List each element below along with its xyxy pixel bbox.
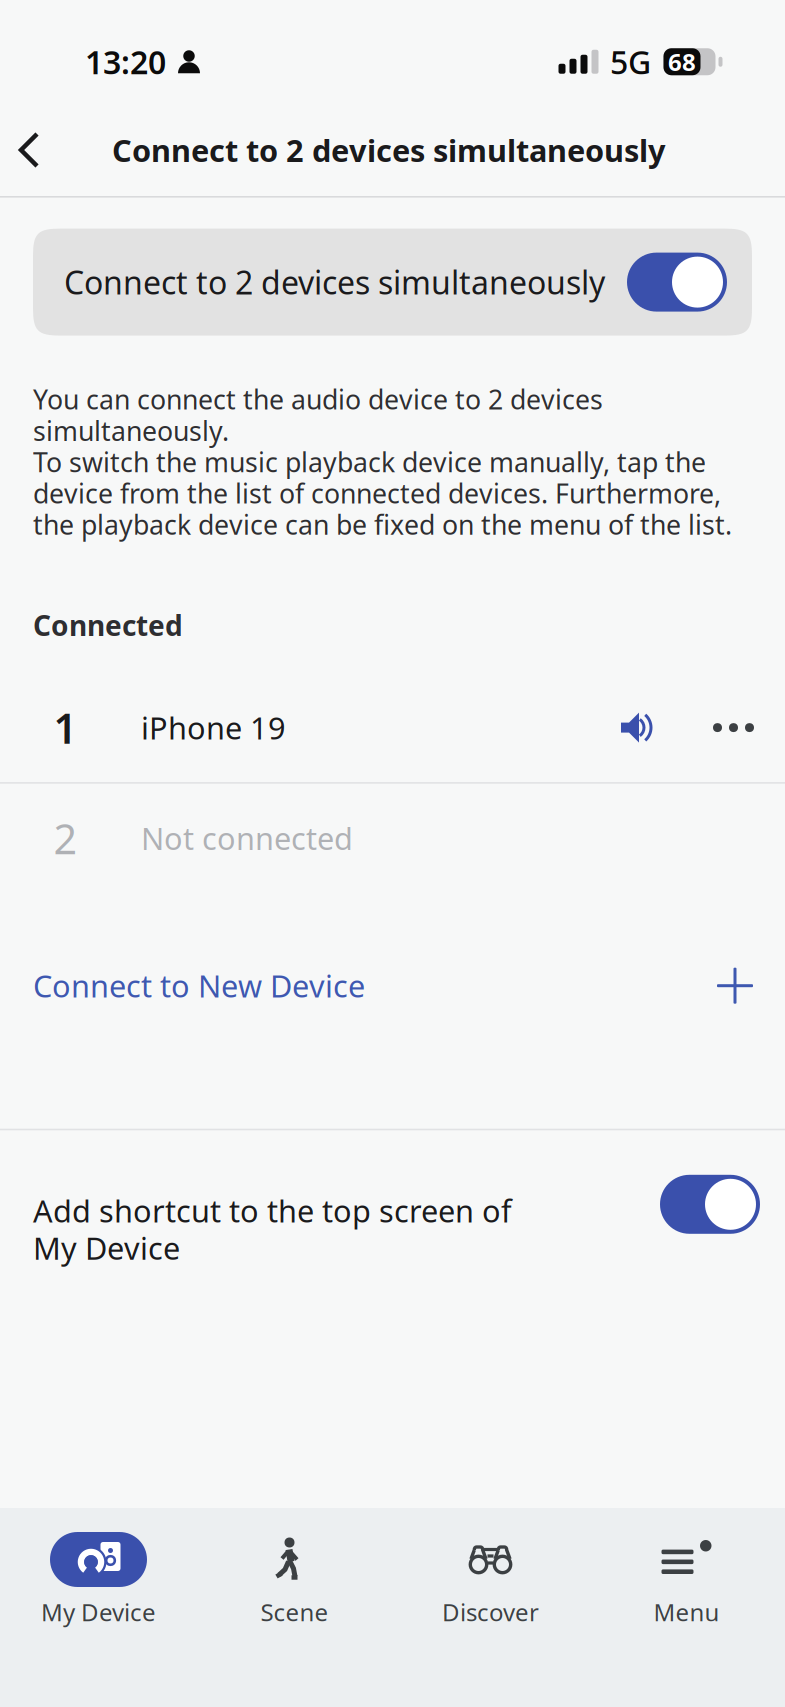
staticText: Discover — [442, 1596, 539, 1628]
staticText: Connect to New Device — [33, 965, 365, 1006]
staticText: the playback device can be fixed on the … — [33, 507, 732, 542]
button[interactable]: Menu — [588, 1532, 784, 1628]
staticText: simultaneously. — [33, 413, 229, 448]
staticText: Connect to 2 devices simultaneously — [64, 261, 605, 303]
button[interactable]: Discover — [392, 1532, 588, 1628]
staticText: Not connected — [141, 818, 353, 858]
button[interactable]: Add shortcut to the top screen of — [0, 1130, 785, 1278]
staticText: My Device — [33, 1228, 180, 1268]
staticText: Menu — [653, 1596, 719, 1628]
staticText: Add shortcut to the top screen of — [33, 1190, 512, 1231]
button[interactable]: 1 — [0, 673, 785, 782]
staticText: Connect to 2 devices simultaneously — [112, 130, 666, 170]
staticText: 1 — [53, 700, 77, 755]
staticText: Scene — [260, 1596, 328, 1628]
button[interactable]: Connect to New Device — [0, 936, 785, 1036]
button[interactable]: Connect to 2 devices simultaneously — [33, 229, 752, 336]
staticText: To switch the music playback device manu… — [33, 444, 706, 479]
button[interactable]: 2 — [0, 784, 785, 893]
button[interactable]: My Device — [0, 1532, 196, 1628]
staticText: You can connect the audio device to 2 de… — [33, 381, 603, 417]
staticText: 5G — [610, 40, 651, 83]
staticText: My Device — [41, 1596, 156, 1628]
staticText: device from the list of connected device… — [33, 475, 721, 511]
button[interactable]: Back — [0, 104, 58, 196]
staticText: Connected — [33, 606, 183, 644]
button[interactable]: Scene — [196, 1532, 392, 1628]
staticText: 13:20 — [85, 40, 166, 83]
staticText: 68 — [668, 46, 696, 78]
staticText: iPhone 19 — [141, 707, 286, 748]
staticText: 2 — [53, 811, 77, 866]
